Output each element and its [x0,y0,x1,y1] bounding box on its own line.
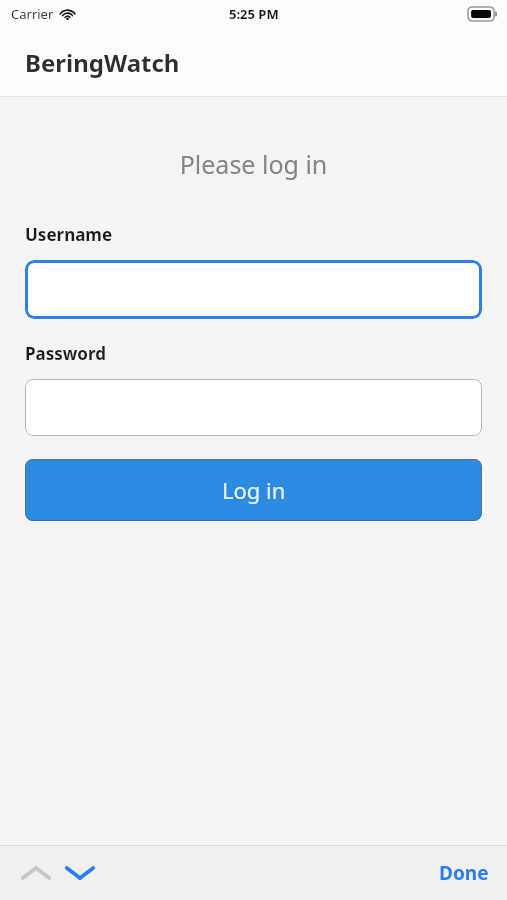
staticText: Username [25,223,113,246]
staticText: Carrier [11,5,54,23]
staticText: Please log in [0,147,507,181]
staticText: Log in [222,475,286,505]
button[interactable]: Next field [58,851,102,895]
button[interactable]: Log in [25,459,482,521]
staticText: BeringWatch [25,46,180,79]
button[interactable]: Previous field [14,851,58,895]
button[interactable]: Username text field [25,260,482,319]
button[interactable]: Password text field [25,379,482,436]
staticText: Done [439,860,489,886]
staticText: Password [25,342,106,365]
staticText: 5:25 PM [229,5,279,23]
button[interactable]: Done [421,852,507,894]
